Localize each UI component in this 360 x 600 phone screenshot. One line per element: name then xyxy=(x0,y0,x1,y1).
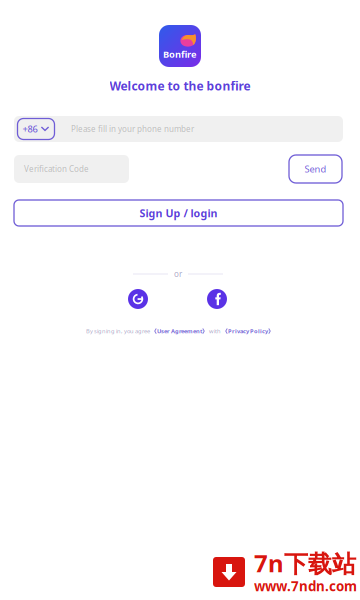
staticText: or xyxy=(174,269,182,279)
staticText: with xyxy=(208,327,222,335)
staticText: Welcome to the bonfire xyxy=(109,78,250,94)
staticText: Verification Code xyxy=(24,164,89,174)
button[interactable]: 《Privacy Policy》 xyxy=(222,327,274,335)
button[interactable]: Continue with Google xyxy=(128,289,148,309)
staticText: www.7ndn.com xyxy=(254,577,357,595)
staticText: 《Privacy Policy》 xyxy=(222,327,274,335)
staticText: +86 xyxy=(22,123,37,135)
staticText: 7n下载站 xyxy=(254,547,356,579)
button[interactable]: Send xyxy=(289,155,342,183)
staticText: Sign Up / login xyxy=(139,206,217,220)
staticText: 《User Agreement》 xyxy=(151,327,208,335)
staticText: Please fill in your phone number xyxy=(71,124,194,134)
button[interactable]: Sign Up / login xyxy=(14,200,343,226)
button[interactable]: Country code +86 xyxy=(17,118,54,139)
button[interactable]: 《User Agreement》 xyxy=(151,327,208,335)
button[interactable]: Continue with Facebook xyxy=(207,289,227,309)
staticText: By signing in, you agree xyxy=(86,327,151,335)
staticText: Send xyxy=(304,163,326,175)
staticText: Bonfire xyxy=(163,48,197,60)
